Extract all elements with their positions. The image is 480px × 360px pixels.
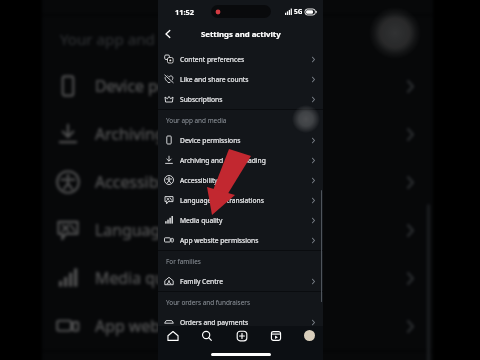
button[interactable]: Subscriptions [42,0,433,14]
button[interactable]: Fundraisers [158,332,323,352]
button[interactable]: Subscriptions [158,89,323,109]
button[interactable]: Home [165,328,180,343]
button[interactable]: App website permissions [42,302,433,350]
staticText: Orders and payments [180,318,249,327]
button[interactable]: App website permissions [158,230,323,250]
staticText: 11:52 [175,7,194,17]
staticText: Device permissions [180,136,241,145]
button[interactable]: Profile [302,328,317,343]
button[interactable]: Orders and payments [158,312,323,332]
button[interactable]: Create [234,328,249,343]
button[interactable]: Device permissions [158,130,323,150]
button[interactable]: Reels [268,328,283,343]
staticText: Accessibility [95,171,185,193]
staticText: Your app and media [60,29,204,50]
staticText: App website permissions [95,315,282,337]
staticText: Archiving and downloading [95,123,299,145]
staticText: Content preferences [180,55,245,64]
button[interactable]: Search [199,328,214,343]
button[interactable]: Content preferences [158,49,323,69]
staticText: Subscriptions [180,95,223,104]
button[interactable]: Like and share counts [158,69,323,89]
button[interactable]: Language and translations [42,206,433,254]
button[interactable]: Archiving and downloading [42,110,433,158]
button[interactable]: Device permissions [42,62,433,110]
staticText: Language and translations [180,196,264,205]
button[interactable]: Archiving and downloading [158,150,323,170]
staticText: 5G [294,7,303,16]
staticText: Family Centre [180,277,224,286]
staticText: Device permissions [95,75,239,97]
button[interactable]: Family Centre [158,271,323,291]
staticText: For families [166,257,201,266]
button[interactable]: Media quality [158,210,323,230]
staticText: Your orders and fundraisers [166,298,250,307]
button[interactable]: Accessibility [158,170,323,190]
staticText: Language and translations [95,219,295,241]
staticText: Your app and media [166,116,227,125]
button[interactable]: Media quality [42,254,433,302]
staticText: Settings and activity [201,29,281,40]
staticText: Media quality [95,267,196,289]
staticText: Archiving and downloading [180,156,266,165]
staticText: Like and share counts [180,75,249,84]
button[interactable]: Accessibility [42,158,433,206]
staticText: Accessibility [180,176,218,185]
staticText: Subscriptions [95,0,196,1]
staticText: Media quality [180,216,223,225]
button[interactable]: Back [161,27,175,41]
staticText: App website permissions [180,236,259,245]
button[interactable]: Language and translations [158,190,323,210]
staticText: Fundraisers [180,338,217,347]
